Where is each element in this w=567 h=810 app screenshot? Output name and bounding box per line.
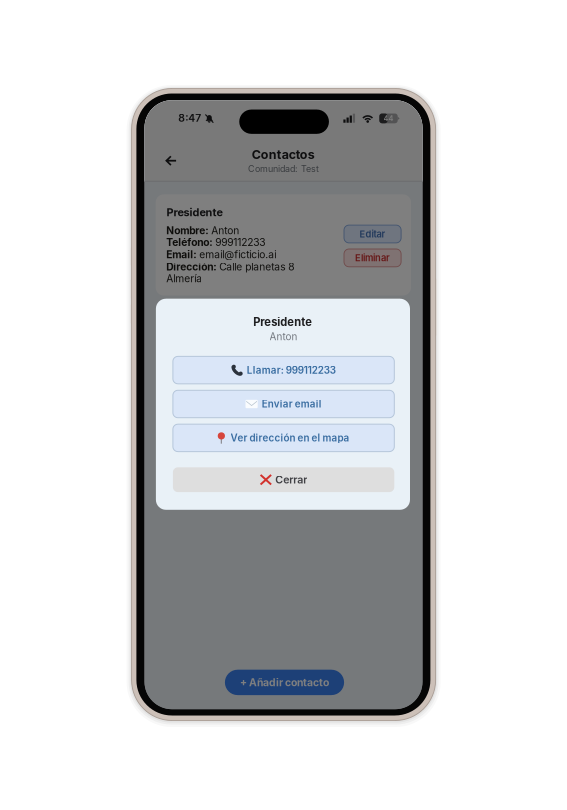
- staticText: Nombre: Anton: [166, 225, 239, 237]
- staticText: Contactos: [252, 147, 315, 162]
- button[interactable]: Back: [156, 148, 186, 174]
- staticText: Ver dirección en el mapa: [230, 432, 349, 444]
- staticText: Anton: [270, 331, 298, 343]
- button[interactable]: Cerrar: [173, 467, 394, 492]
- staticText: 44: [383, 114, 393, 123]
- staticText: 8:47: [178, 112, 201, 124]
- button[interactable]: Llamar: 999112233: [173, 356, 394, 384]
- staticText: Enviar email: [262, 398, 322, 410]
- button[interactable]: Enviar email: [173, 390, 394, 418]
- staticText: Cerrar: [275, 473, 307, 486]
- button[interactable]: Ver dirección en el mapa: [173, 424, 394, 452]
- staticText: Email: email@ficticio.ai: [166, 249, 276, 261]
- staticText: Editar: [360, 228, 386, 240]
- button[interactable]: + Añadir contacto: [225, 670, 344, 695]
- staticText: Eliminar: [355, 252, 390, 264]
- staticText: Llamar: 999112233: [247, 364, 336, 376]
- staticText: Dirección: Calle planetas 8: [166, 261, 294, 273]
- staticText: Presidente: [253, 315, 312, 329]
- staticText: Presidente: [167, 206, 223, 219]
- staticText: Almería: [166, 272, 202, 284]
- button[interactable]: Eliminar: [344, 249, 401, 267]
- button[interactable]: Editar: [344, 225, 401, 243]
- staticText: + Añadir contacto: [240, 676, 329, 689]
- staticText: Comunidad: Test: [248, 163, 319, 174]
- staticText: Teléfono: 999112233: [166, 236, 265, 248]
